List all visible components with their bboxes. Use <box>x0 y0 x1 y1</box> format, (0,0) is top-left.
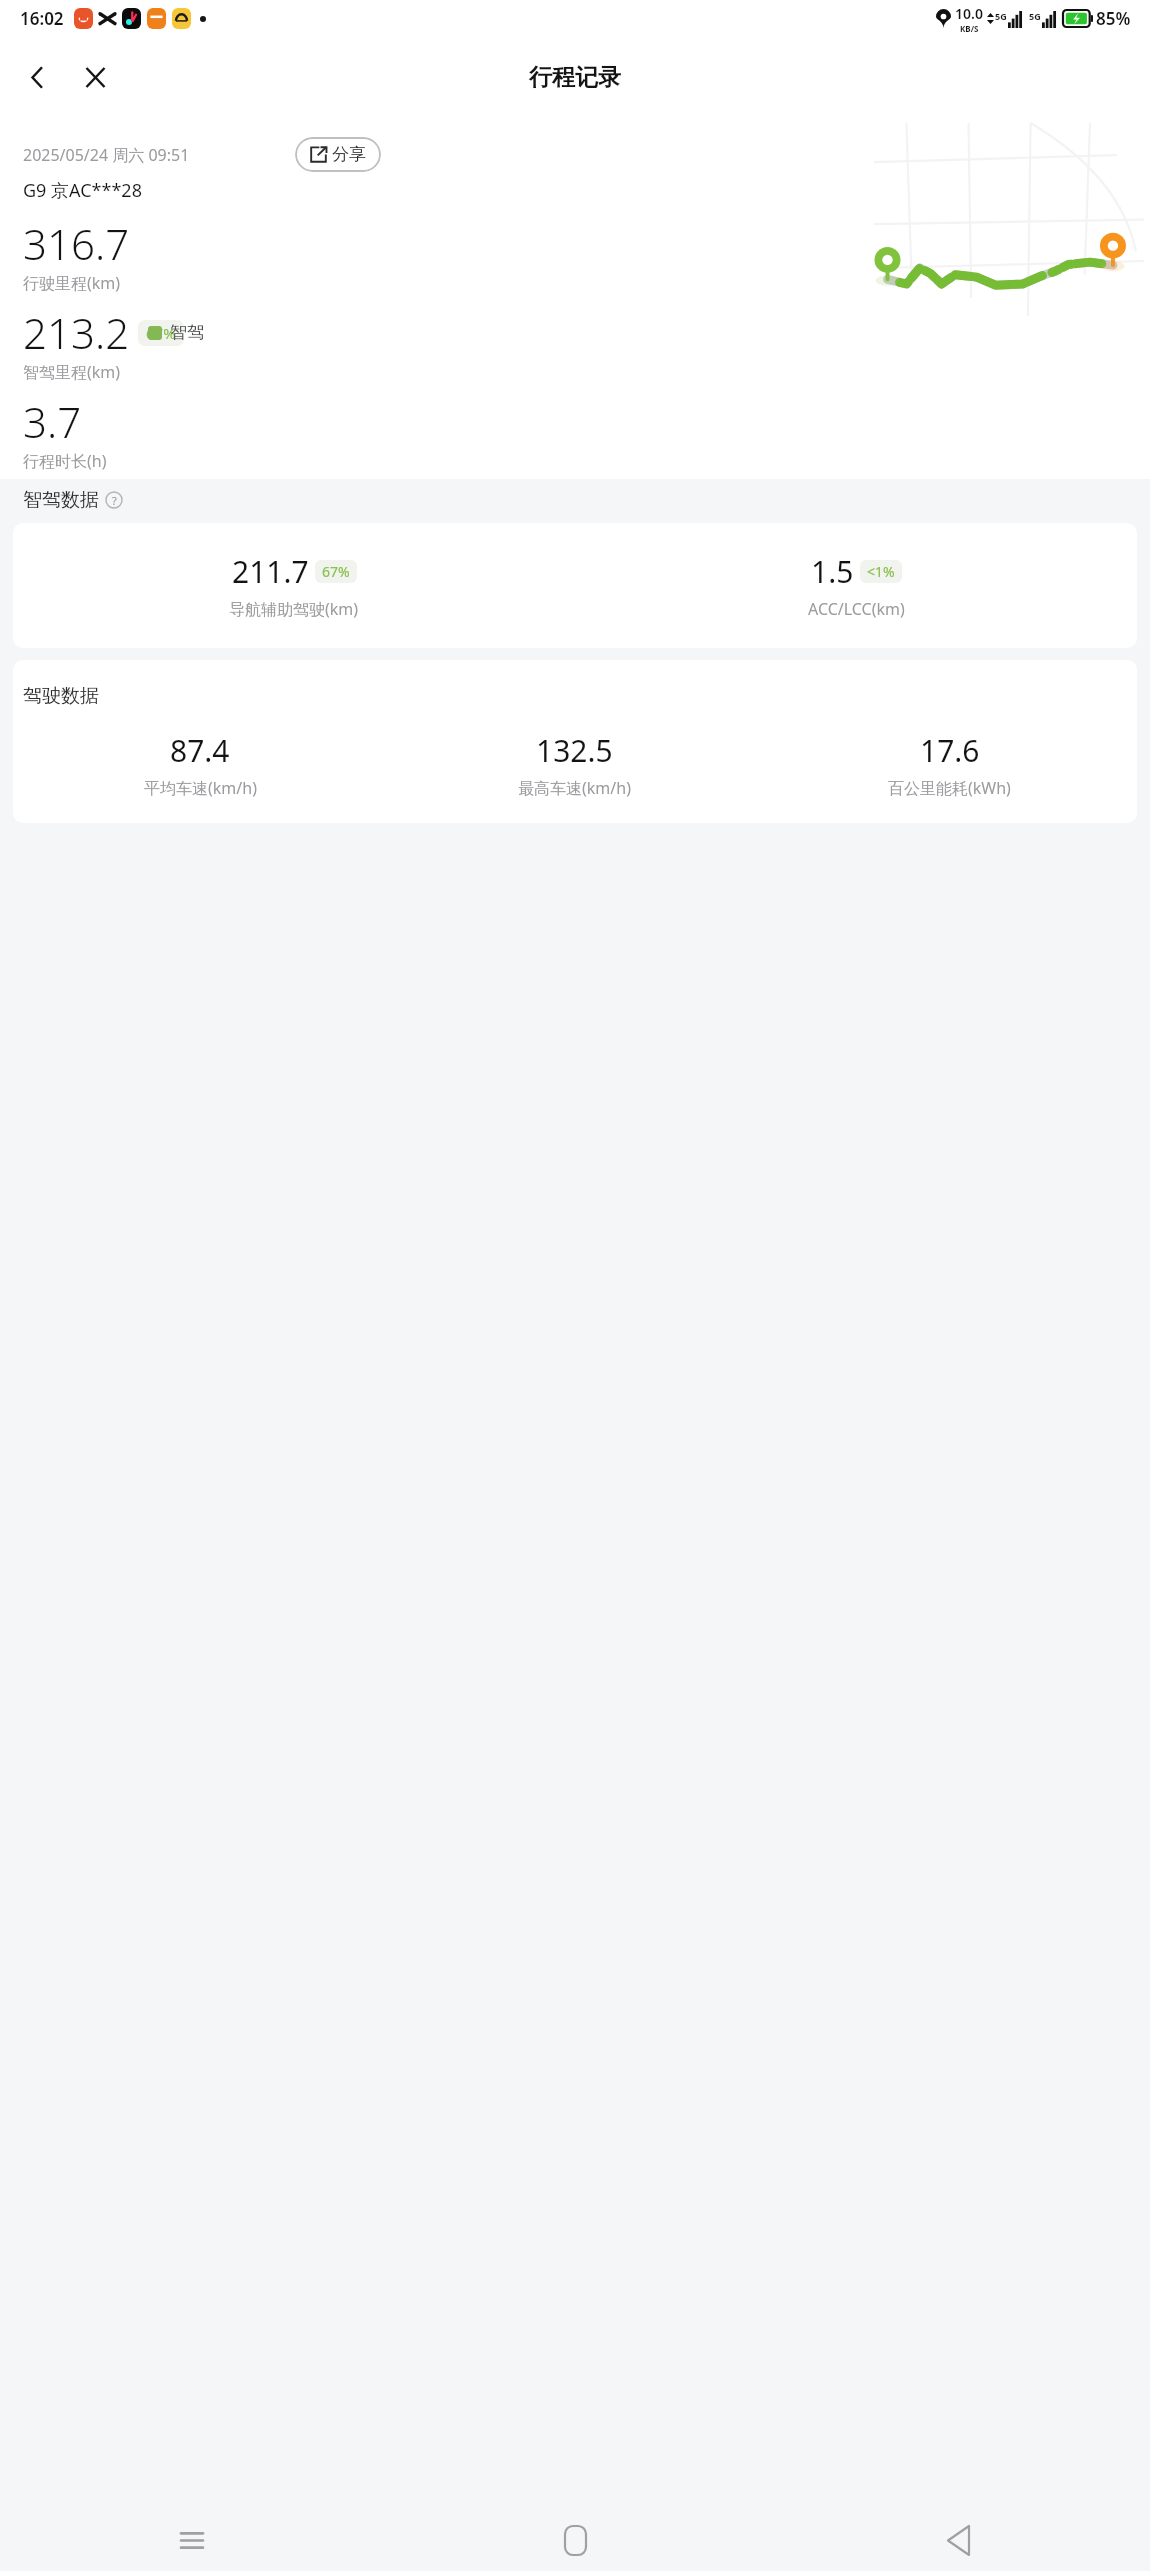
staticText: 5G <box>995 10 1007 22</box>
staticText: 132.5 <box>536 730 613 771</box>
staticText: 316.7 <box>23 215 130 272</box>
staticText: 分享 <box>332 144 366 165</box>
staticText: 211.7 <box>232 551 309 592</box>
button[interactable]: Home <box>384 2509 767 2571</box>
button[interactable]: 211.7 <box>13 523 1137 648</box>
button[interactable]: 分享 <box>295 137 381 172</box>
staticText: 67% <box>322 562 350 581</box>
staticText: 智驾里程(km) <box>23 361 121 383</box>
staticText: 智驾数据 <box>23 488 99 512</box>
staticText: 213.2 <box>23 304 130 361</box>
staticText: 平均车速(km/h) <box>144 777 257 799</box>
staticText: 行驶里程(km) <box>23 272 121 294</box>
staticText: ACC/LCC(km) <box>808 598 905 620</box>
button[interactable]: 驾驶数据 <box>13 660 1137 823</box>
staticText: 导航辅助驾驶(km) <box>229 598 359 620</box>
staticText: 行程时长(h) <box>23 450 107 472</box>
staticText: 智驾 <box>170 322 204 343</box>
staticText: ? <box>112 493 117 508</box>
staticText: 3.7 <box>23 393 82 450</box>
button[interactable]: Back <box>13 53 61 101</box>
staticText: 最高车速(km/h) <box>518 777 631 799</box>
staticText: <1% <box>867 562 895 581</box>
staticText: 驾驶数据 <box>23 684 99 708</box>
button[interactable]: Recents <box>0 2509 384 2571</box>
staticText: 百公里能耗(kWh) <box>888 777 1011 799</box>
button[interactable]: Back <box>767 2509 1150 2571</box>
staticText: 17.6 <box>920 730 980 771</box>
staticText: 16:02 <box>20 7 64 30</box>
staticText: G9 京AC***28 <box>23 178 142 203</box>
staticText: 行程记录 <box>529 63 621 92</box>
staticText: 10.0 <box>955 4 983 23</box>
staticText: KB/S <box>960 23 979 34</box>
staticText: 1.5 <box>811 551 854 592</box>
button[interactable]: Close <box>71 53 119 101</box>
button[interactable]: Help <box>104 490 124 510</box>
staticText: 85% <box>1096 7 1131 30</box>
staticText: 5G <box>1029 10 1041 22</box>
staticText: 2025/05/24 周六 09:51 <box>23 144 190 166</box>
staticText: 87.4 <box>170 730 230 771</box>
staticText: 67% <box>146 323 176 343</box>
